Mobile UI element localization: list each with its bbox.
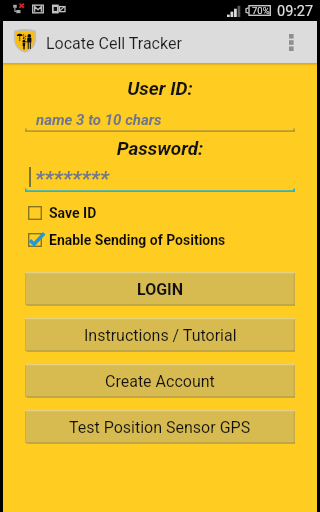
staticText: 09:27 (277, 3, 314, 20)
button[interactable]: Test Position Sensor GPS (25, 410, 295, 444)
button[interactable]: Enable Sending of Positions (28, 232, 317, 248)
staticText: Instructions / Tutorial (84, 326, 237, 345)
staticText: Enable Sending of Positions (49, 232, 226, 248)
staticText: Password: (3, 137, 317, 159)
staticText: name 3 to 10 chars (36, 111, 162, 129)
button[interactable]: Instructions / Tutorial (25, 318, 295, 352)
staticText: User ID: (3, 77, 317, 99)
button[interactable]: ******** (25, 167, 295, 192)
staticText: LOGIN (137, 280, 184, 299)
staticText: Save ID (49, 205, 97, 221)
button[interactable]: name 3 to 10 chars (25, 111, 295, 132)
button[interactable]: LOGIN (25, 272, 295, 306)
staticText: Create Account (105, 372, 215, 391)
staticText: Test Position Sensor GPS (69, 418, 251, 437)
staticText: ******** (35, 167, 109, 192)
staticText: 70% (252, 5, 270, 16)
button[interactable]: More options (283, 21, 317, 63)
button[interactable]: Create Account (25, 364, 295, 398)
button[interactable]: Save ID (28, 205, 317, 221)
staticText: Locate Cell Tracker (46, 34, 182, 53)
